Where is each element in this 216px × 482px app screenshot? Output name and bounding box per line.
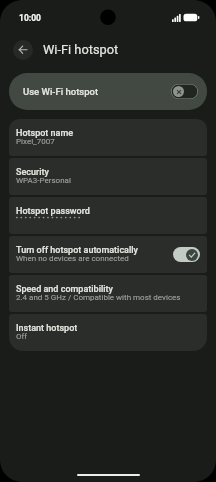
button[interactable]: Turn off hotspot automatically: [9, 236, 207, 273]
staticText: Security: [16, 167, 202, 178]
staticText: Hotspot name: [16, 128, 202, 139]
button[interactable]: Security: [9, 158, 207, 195]
button[interactable]: Use Wi-Fi hotspot: [9, 73, 207, 110]
button[interactable]: Speed and compatibility: [9, 275, 207, 312]
staticText: Use Wi-Fi hotspot: [23, 86, 99, 97]
staticText: Speed and compatibility: [16, 284, 202, 295]
staticText: Hotspot password: [16, 206, 202, 217]
staticText: 2.4 and 5 GHz / Compatible with most dev…: [16, 293, 202, 302]
button[interactable]: Turn off hotspot automatically: [173, 247, 200, 262]
staticText: Off: [16, 332, 202, 341]
staticText: Pixel_7007: [16, 137, 202, 146]
button[interactable]: Hotspot password: [9, 197, 207, 234]
staticText: Turn off hotspot automatically: [16, 245, 166, 256]
staticText: 10:00: [19, 13, 41, 23]
staticText: When no devices are connected: [16, 254, 166, 263]
staticText: Wi-Fi hotspot: [43, 42, 119, 57]
button[interactable]: Hotspot name: [9, 119, 207, 156]
button[interactable]: Back: [13, 40, 33, 60]
button[interactable]: Instant hotspot: [9, 314, 207, 351]
staticText: Instant hotspot: [16, 323, 202, 334]
staticText: WPA3-Personal: [16, 176, 202, 185]
button[interactable]: Use Wi-Fi hotspot: [171, 84, 198, 99]
